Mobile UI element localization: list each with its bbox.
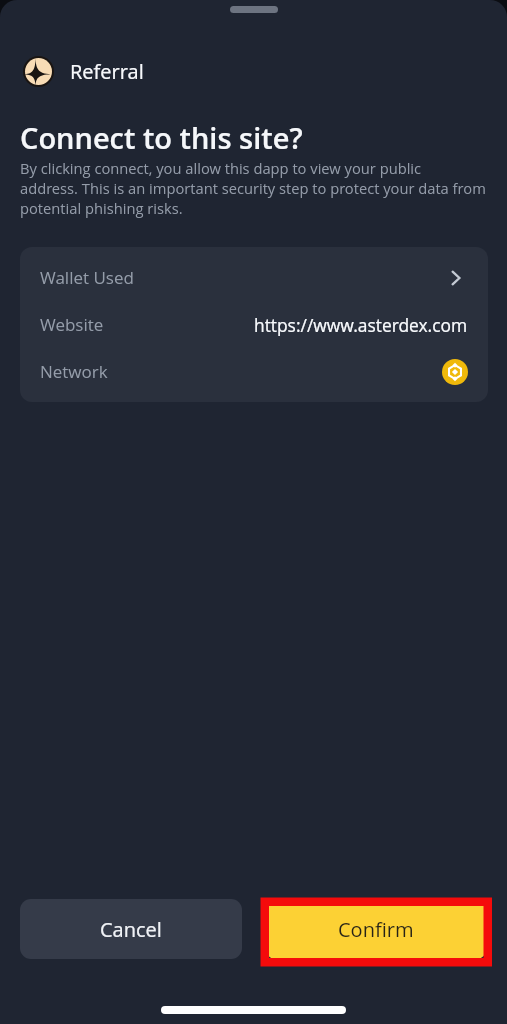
button[interactable]: Confirm [265, 899, 487, 959]
staticText: By clicking connect, you allow this dapp… [20, 158, 486, 218]
staticText: Cancel [100, 916, 162, 943]
staticText: Network [40, 360, 108, 383]
staticText: https://www.asterdex.com [254, 313, 468, 337]
staticText: Referral [70, 58, 144, 85]
staticText: Website [40, 313, 104, 336]
staticText: Wallet Used [40, 266, 134, 289]
staticText: Confirm [338, 916, 414, 943]
button[interactable]: Cancel [20, 899, 242, 959]
other: BNB Chain [442, 359, 468, 385]
staticText: Connect to this site? [20, 118, 303, 157]
button[interactable]: Wallet Used [40, 254, 468, 301]
